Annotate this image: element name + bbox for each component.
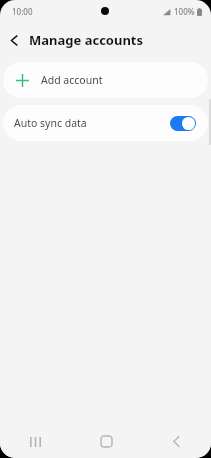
staticText: 10:00 — [12, 6, 33, 17]
button[interactable]: Back — [0, 26, 28, 54]
button[interactable]: Home — [71, 425, 141, 458]
button[interactable]: Auto sync data toggle — [170, 116, 196, 131]
button[interactable]: Recent apps — [0, 425, 71, 458]
button[interactable]: Back — [141, 425, 211, 458]
staticText: Auto sync data — [14, 116, 170, 130]
staticText: 100% — [174, 6, 195, 17]
button[interactable]: Add account — [3, 62, 208, 98]
button[interactable]: Auto sync data — [3, 105, 208, 141]
staticText: Manage accounts — [29, 31, 144, 49]
staticText: Add account — [41, 73, 103, 87]
